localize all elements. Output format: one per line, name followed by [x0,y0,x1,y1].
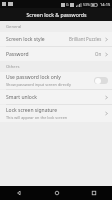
staticText: This will appear on the lock screen [6,115,68,120]
button[interactable]: Back [0,186,38,200]
staticText: Password [6,51,29,58]
staticText: Brilliant Puzzles [69,36,102,42]
button[interactable]: Smart unlock [0,90,112,104]
staticText: On [95,51,102,57]
staticText: Others [6,64,20,70]
staticText: Screen lock style [6,36,45,43]
button[interactable]: Home [38,186,75,200]
staticText: G [66,2,69,7]
staticText: Lock screen signature [6,107,58,114]
staticText: 14:15 [100,2,111,7]
button[interactable]: Recents [75,186,112,200]
button[interactable]: Screen lock style [0,32,112,46]
button[interactable]: Password [0,47,112,61]
staticText: Use password lock only [6,74,61,81]
staticText: Smart unlock [6,94,37,101]
other: Use password lock only toggle [94,77,108,84]
staticText: Show password input screen directly [6,82,71,87]
staticText: 53% [83,2,90,7]
button[interactable]: Use password lock only [0,72,112,89]
button[interactable]: Lock screen signature [0,105,112,122]
staticText: General [6,24,22,30]
staticText: Screen lock & passwords [26,11,87,18]
